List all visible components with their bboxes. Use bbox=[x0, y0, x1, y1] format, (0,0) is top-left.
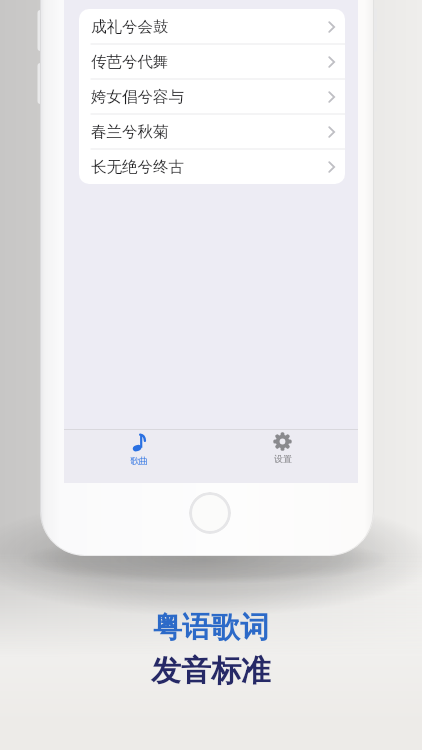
staticText: 成礼兮会鼓 bbox=[91, 17, 169, 37]
button[interactable]: 春兰兮秋菊 bbox=[79, 114, 345, 149]
button[interactable]: 设置 bbox=[242, 432, 322, 482]
button[interactable]: 歌曲 bbox=[99, 432, 179, 482]
button[interactable]: 姱女倡兮容与 bbox=[79, 79, 345, 114]
staticText: 歌曲 bbox=[130, 455, 148, 466]
button[interactable]: 长无绝兮终古 bbox=[79, 149, 345, 184]
button[interactable] bbox=[189, 492, 231, 534]
staticText: 粤语歌词 bbox=[0, 609, 422, 646]
staticText: 长无绝兮终古 bbox=[91, 157, 184, 177]
staticText: 传芭兮代舞 bbox=[91, 52, 169, 72]
staticText: 春兰兮秋菊 bbox=[91, 122, 169, 142]
staticText: 发音标准 bbox=[0, 652, 422, 690]
button[interactable]: 传芭兮代舞 bbox=[79, 44, 345, 79]
staticText: 姱女倡兮容与 bbox=[91, 87, 184, 107]
button[interactable]: 成礼兮会鼓 bbox=[79, 9, 345, 44]
staticText: 设置 bbox=[274, 453, 292, 464]
